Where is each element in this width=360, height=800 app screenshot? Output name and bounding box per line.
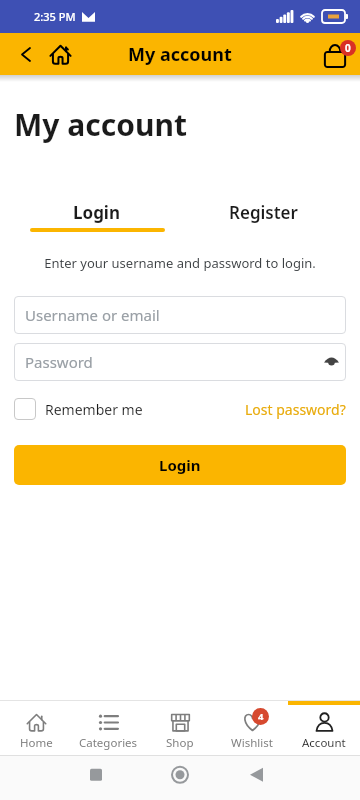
button[interactable]: Account <box>288 701 360 755</box>
staticText: Remember me <box>45 400 143 419</box>
button[interactable]: Username or email <box>14 296 346 334</box>
button[interactable] <box>14 42 38 66</box>
button[interactable]: Lost password? <box>245 400 346 419</box>
staticText: Wishlist <box>231 735 273 751</box>
staticText: Home <box>20 735 53 751</box>
staticText: 4 <box>258 710 264 723</box>
button[interactable]: Home <box>0 701 72 755</box>
staticText: Account <box>302 735 346 751</box>
button[interactable]: Register <box>180 201 346 224</box>
staticText: Password <box>25 352 93 372</box>
button[interactable]: Shop <box>144 701 216 755</box>
staticText: Shop <box>166 735 194 751</box>
button[interactable] <box>46 40 74 68</box>
button[interactable]: Login <box>14 445 346 485</box>
staticText: Login <box>159 455 201 475</box>
staticText: Enter your username and password to logi… <box>0 254 360 272</box>
button[interactable]: Password <box>14 343 346 381</box>
staticText: My account <box>128 42 232 67</box>
staticText: 0 <box>345 41 351 55</box>
staticText: My account <box>14 104 187 145</box>
staticText: Register <box>229 201 298 224</box>
button[interactable]: Categories <box>72 701 144 755</box>
staticText: 2:35 PM <box>34 9 76 24</box>
staticText: Username or email <box>25 305 160 325</box>
button[interactable]: 4 <box>216 701 288 755</box>
button[interactable]: Login <box>14 201 180 232</box>
staticText: Categories <box>79 735 138 751</box>
button[interactable] <box>14 398 36 420</box>
button[interactable]: 0 <box>316 33 360 75</box>
staticText: Login <box>73 201 121 224</box>
